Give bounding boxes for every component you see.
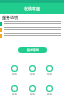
other: service: [29, 65, 36, 72]
staticText: 联系客服: [27, 48, 39, 52]
other: service: [11, 65, 18, 72]
button[interactable]: service: [11, 85, 18, 96]
other: service: [29, 85, 36, 92]
staticText: 在线客服: [24, 6, 40, 11]
button[interactable]: 联系客服: [18, 47, 47, 53]
staticText: 客服: [47, 93, 52, 96]
button[interactable]: service: [29, 85, 36, 96]
staticText: 客服: [47, 73, 52, 76]
button[interactable]: service: [46, 65, 53, 76]
other: service: [11, 85, 18, 92]
button[interactable]: service: [11, 65, 18, 76]
button[interactable]: service: [29, 65, 36, 76]
other: service: [46, 65, 53, 72]
staticText: 客服: [30, 93, 35, 96]
staticText: 客服: [30, 73, 35, 76]
other: service: [46, 85, 53, 92]
staticText: 客服: [12, 73, 17, 76]
staticText: 客服: [12, 93, 17, 96]
staticText: 服务说明: [2, 15, 18, 20]
button[interactable]: service: [46, 85, 53, 96]
